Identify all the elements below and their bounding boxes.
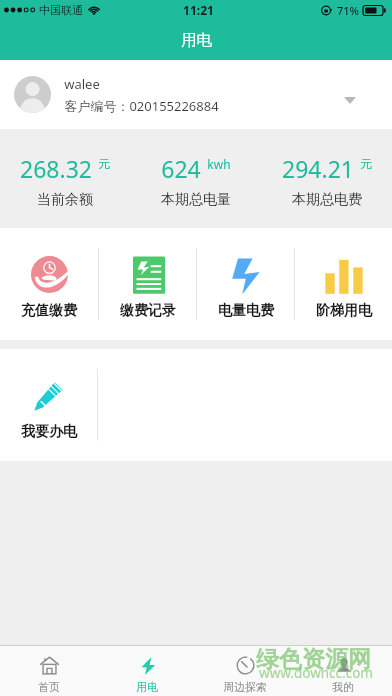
staticText: 周边探索 [223, 680, 267, 694]
staticText: 中国联通 [39, 3, 83, 17]
staticText: 用电 [181, 30, 212, 50]
staticText: 624 [161, 153, 201, 184]
button[interactable]: 电量电费 [197, 228, 294, 340]
button[interactable]: 268.32 [0, 129, 130, 228]
staticText: 客户编号：020155226884 [64, 97, 219, 115]
button[interactable]: Select account [338, 83, 362, 107]
staticText: 我的 [332, 680, 354, 694]
staticText: 294.21 [282, 153, 354, 184]
button[interactable]: 缴费记录 [99, 228, 196, 340]
button[interactable]: 我要办电 [0, 349, 97, 461]
staticText: 元 [98, 156, 110, 171]
button[interactable]: walee [0, 60, 392, 129]
staticText: 本期总电费 [292, 191, 362, 209]
staticText: 阶梯用电 [316, 302, 372, 320]
staticText: 充值缴费 [21, 302, 77, 320]
staticText: 本期总电量 [161, 191, 231, 209]
staticText: www.downcc.com [259, 664, 373, 682]
staticText: 绿色资源网 [256, 645, 371, 674]
staticText: 缴费记录 [120, 302, 176, 320]
staticText: 我要办电 [21, 423, 77, 441]
button[interactable]: 294.21 [261, 129, 392, 228]
button[interactable]: 用电 [98, 646, 196, 696]
button[interactable]: 我的 [294, 646, 392, 696]
button[interactable]: 周边探索 [196, 646, 294, 696]
staticText: 首页 [38, 680, 60, 694]
staticText: 用电 [136, 680, 158, 694]
button[interactable]: 624 [130, 129, 261, 228]
staticText: 当前余额 [37, 191, 93, 209]
button[interactable]: 首页 [0, 646, 98, 696]
staticText: walee [64, 75, 100, 93]
button[interactable]: 阶梯用电 [295, 228, 392, 340]
staticText: 元 [360, 156, 372, 171]
button[interactable]: 充值缴费 [0, 228, 98, 340]
staticText: kwh [207, 156, 231, 172]
staticText: 268.32 [20, 153, 92, 184]
staticText: 电量电费 [218, 302, 274, 320]
staticText: 71% [337, 3, 359, 18]
staticText: 11:21 [183, 2, 214, 18]
